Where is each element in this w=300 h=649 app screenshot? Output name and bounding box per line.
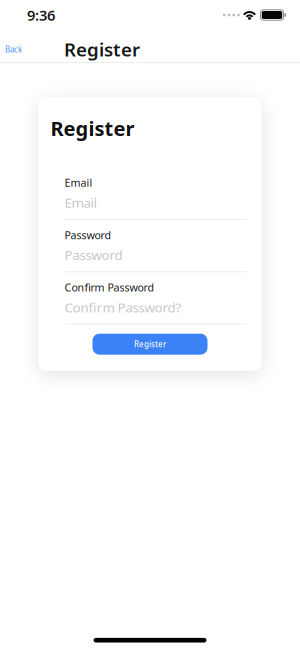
staticText: Email [64, 176, 92, 190]
button[interactable]: Back [0, 39, 30, 59]
button[interactable]: Register [92, 334, 207, 355]
staticText: Confirm Password? [64, 298, 181, 316]
staticText: Back [5, 44, 22, 55]
staticText: Register [134, 339, 166, 349]
staticText: Register [64, 37, 140, 62]
staticText: Register [50, 115, 134, 142]
staticText: Email [64, 194, 96, 211]
staticText: Password [64, 228, 111, 242]
staticText: 9:36 [27, 5, 55, 25]
staticText: Confirm Password [64, 280, 154, 294]
staticText: Password [64, 246, 122, 264]
